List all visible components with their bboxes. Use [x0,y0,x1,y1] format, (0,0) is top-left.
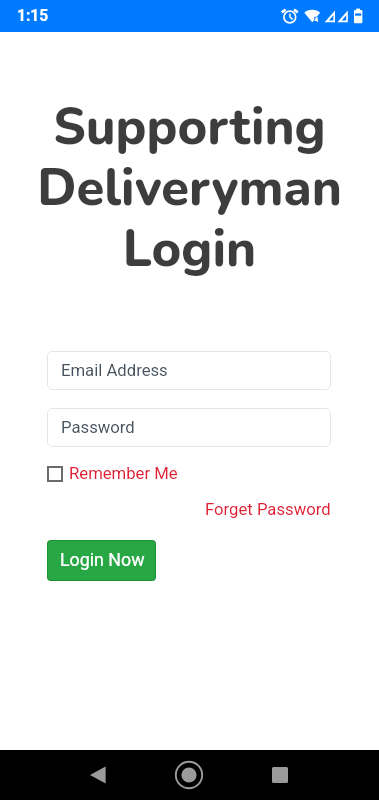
staticText: 1:15 [17,7,49,25]
button[interactable]: Back [0,750,127,800]
button[interactable]: Email Address [47,351,331,390]
button[interactable]: Forget Password [205,500,331,520]
staticText: Email Address [61,361,168,381]
button[interactable]: Password [47,408,331,447]
staticText: Supporting Deliveryman Login [4,93,375,284]
staticText: Password [61,418,135,438]
button[interactable]: Login Now [48,541,155,580]
staticText: Remember Me [69,464,178,484]
button[interactable]: Home [127,750,253,800]
staticText: Login Now [60,549,145,570]
button[interactable]: Recent apps [253,750,379,800]
button[interactable]: Remember Me [47,464,178,484]
